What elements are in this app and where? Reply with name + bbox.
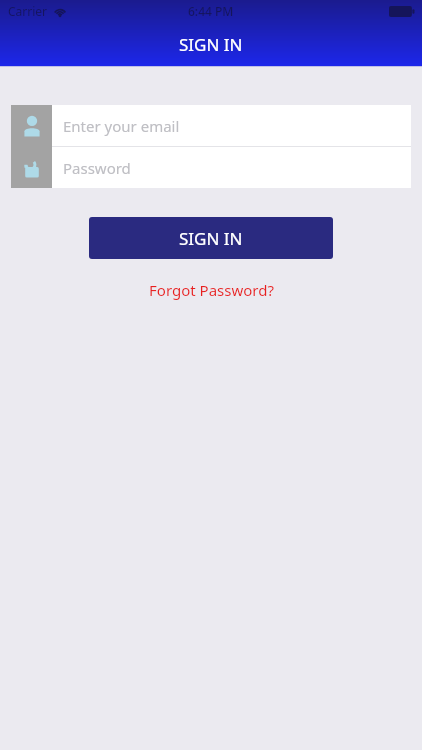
button[interactable]: Password	[11, 147, 411, 188]
staticText: 6:44 PM	[188, 3, 234, 19]
button[interactable]: Enter your email	[11, 105, 411, 146]
staticText: SIGN IN	[179, 33, 243, 56]
staticText: SIGN IN	[179, 227, 243, 250]
button[interactable]: Forgot Password?	[141, 276, 282, 304]
staticText: Password	[63, 158, 131, 178]
staticText: Forgot Password?	[149, 280, 274, 300]
staticText: Carrier	[8, 3, 48, 19]
button[interactable]: SIGN IN	[89, 217, 333, 259]
staticText: Enter your email	[63, 116, 180, 136]
